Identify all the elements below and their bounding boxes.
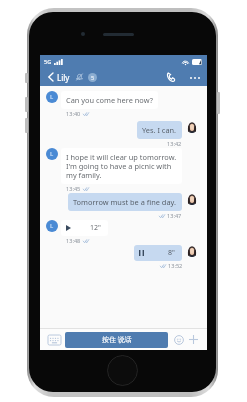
staticText: 13:45: [66, 185, 81, 193]
button[interactable]: Keyboard: [47, 334, 61, 345]
button[interactable]: More options: [188, 71, 201, 84]
staticText: 按住 说话: [102, 335, 132, 345]
staticText: Lily: [57, 72, 70, 83]
staticText: Yes. I can.: [142, 125, 177, 135]
staticText: Tomorrow must be a fine day.: [73, 197, 177, 207]
button[interactable]: My avatar: [186, 193, 198, 205]
button[interactable]: 8": [134, 245, 182, 261]
staticText: 13:48: [66, 237, 81, 245]
staticText: L: [50, 222, 54, 230]
button[interactable]: Mute notifications: [74, 72, 84, 82]
staticText: 13:52: [168, 262, 183, 270]
button[interactable]: Yes. I can.: [137, 121, 182, 139]
button[interactable]: 5 members: [88, 73, 97, 82]
staticText: 13:40: [66, 110, 81, 118]
staticText: 8": [168, 248, 175, 258]
staticText: L: [50, 150, 54, 158]
staticText: I hope it will clear up tomorrow. I'm go…: [66, 152, 177, 180]
button[interactable]: I hope it will clear up tomorrow. I'm go…: [61, 148, 182, 184]
button[interactable]: 12": [61, 220, 108, 236]
staticText: L: [50, 93, 54, 101]
button[interactable]: Lily avatar: [46, 148, 58, 160]
button[interactable]: Lily avatar: [46, 91, 58, 103]
button[interactable]: Lily avatar: [46, 220, 58, 232]
button[interactable]: Emoji: [173, 334, 184, 345]
staticText: 13:47: [167, 212, 182, 220]
staticText: 5: [91, 74, 95, 81]
staticText: 12": [90, 223, 101, 233]
button[interactable]: Can you come here now?: [61, 91, 158, 109]
button[interactable]: 按住 说话: [65, 332, 168, 348]
button[interactable]: Back: [46, 70, 55, 84]
button[interactable]: Call: [164, 70, 178, 84]
button[interactable]: Add attachment: [188, 334, 199, 345]
staticText: 13:42: [167, 140, 182, 148]
button[interactable]: My avatar: [186, 245, 198, 257]
staticText: 5G: [44, 58, 52, 65]
button[interactable]: My avatar: [186, 121, 198, 133]
staticText: Can you come here now?: [66, 95, 153, 105]
button[interactable]: Tomorrow must be a fine day.: [68, 193, 182, 211]
